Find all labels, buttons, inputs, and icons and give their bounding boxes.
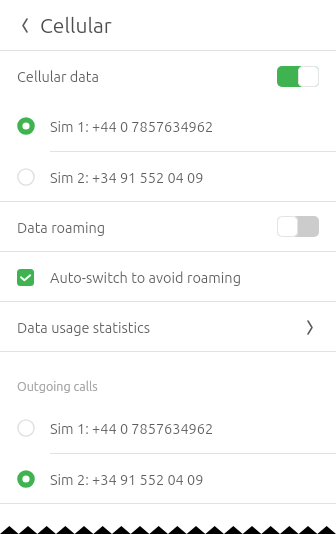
button[interactable]: Cellular data <box>277 66 319 87</box>
staticText: Sim 1: +44 0 7857634962 <box>50 118 214 134</box>
staticText: Sim 2: +34 91 552 04 09 <box>50 471 204 487</box>
button[interactable]: Cellular data <box>0 51 336 101</box>
staticText: Cellular data <box>17 68 99 84</box>
button[interactable]: Data usage statistics <box>0 302 336 351</box>
staticText: Outgoing calls <box>17 379 98 393</box>
staticText: Sim 1: +44 0 7857634962 <box>50 420 214 436</box>
button[interactable]: Back <box>0 0 336 50</box>
staticText: Auto-switch to avoid roaming <box>50 269 241 285</box>
button[interactable]: Sim 2: +34 91 552 04 09 <box>0 152 336 201</box>
button[interactable]: Data roaming <box>277 216 319 237</box>
other: Open data usage statistics <box>308 321 312 334</box>
button[interactable]: Sim 1: +44 0 7857634962 <box>0 101 336 151</box>
staticText: Sim 2: +34 91 552 04 09 <box>50 169 204 185</box>
button[interactable]: Sim 2: +34 91 552 04 09 <box>0 454 336 503</box>
staticText: Cellular <box>40 13 112 37</box>
button[interactable]: Data roaming <box>0 202 336 251</box>
other: Back <box>23 19 27 32</box>
staticText: Data usage statistics <box>17 319 151 335</box>
button[interactable]: Auto-switch to avoid roaming <box>0 252 336 301</box>
staticText: Data roaming <box>17 219 106 235</box>
button[interactable]: Sim 1: +44 0 7857634962 <box>0 403 336 453</box>
